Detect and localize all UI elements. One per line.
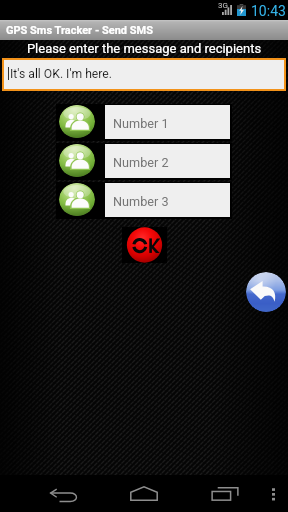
button[interactable]: It's all OK. I'm here. <box>4 60 284 89</box>
staticText: Number 1 <box>113 116 169 131</box>
button[interactable]: Number 2 <box>105 144 230 178</box>
button[interactable]: Recent apps <box>193 475 257 512</box>
button[interactable]: Number 1 <box>105 105 230 139</box>
staticText: 3G <box>218 1 228 10</box>
button[interactable]: Number 3 <box>105 183 230 217</box>
button[interactable]: Home <box>112 475 176 512</box>
staticText: 10:43 <box>251 3 286 19</box>
staticText: It's all OK. I'm here. <box>10 67 113 81</box>
button[interactable]: Back <box>32 475 96 512</box>
button[interactable]: Pick contact <box>59 144 95 177</box>
button[interactable]: Pick contact <box>59 183 95 216</box>
staticText: Number 2 <box>113 155 169 170</box>
button[interactable]: Pick contact <box>59 105 95 138</box>
staticText: GPS Sms Tracker - Send SMS <box>6 24 153 37</box>
button[interactable]: Back <box>246 272 286 312</box>
staticText: Number 3 <box>113 194 169 209</box>
staticText: Please enter the message and recipients <box>0 41 288 56</box>
button[interactable]: OK, send SMS <box>122 227 167 263</box>
button[interactable]: More options <box>258 475 288 512</box>
